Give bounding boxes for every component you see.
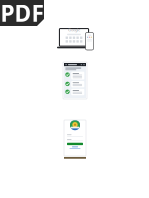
staticText: PDF: [0, 0, 43, 28]
staticText: Google: [68, 27, 80, 32]
